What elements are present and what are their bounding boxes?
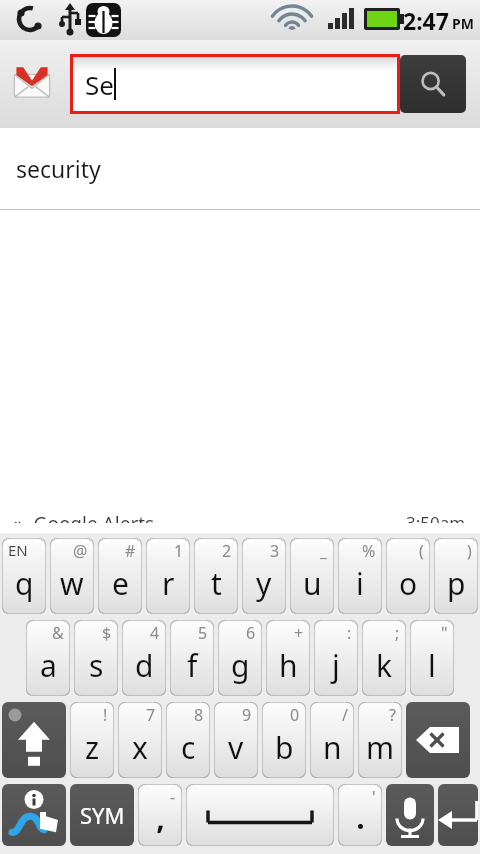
staticText: w [60,563,84,604]
button[interactable]: 0 [262,702,306,778]
staticText: 8 [194,704,204,726]
staticText: 1 [174,540,184,562]
staticText: 6 [246,622,256,644]
staticText: 3:50am [406,511,466,523]
staticText: x [132,727,148,768]
staticText: @ [73,540,88,562]
button[interactable]: : [314,620,358,696]
button[interactable]: 5 [170,620,214,696]
staticText: s [89,645,104,686]
staticText: o [399,563,418,604]
staticText: security [16,153,101,184]
staticText: 2 [222,540,232,562]
staticText: z [85,727,100,768]
staticText: j [332,645,340,686]
staticText: ( [419,540,424,562]
button[interactable]: 2 [194,538,238,614]
button[interactable]: 1 [146,538,190,614]
staticText: 7 [146,704,156,726]
staticText: t [211,563,222,604]
staticText: g [231,645,250,686]
button[interactable]: SYM [70,784,134,846]
button[interactable]: ! [70,702,114,778]
staticText: l [428,645,436,686]
button[interactable]: Shift [2,702,66,778]
button[interactable]: ) [434,538,478,614]
button[interactable]: 6 [218,620,262,696]
button[interactable]: security [0,128,480,209]
staticText: 0 [290,704,300,726]
button[interactable]: Gmail [8,60,56,108]
staticText: v [228,727,244,768]
staticText: k [376,645,393,686]
button[interactable]: 4 [122,620,166,696]
staticText: 9 [242,704,252,726]
staticText: d [135,645,154,686]
button[interactable]: # [98,538,142,614]
button[interactable]: 3 [242,538,286,614]
staticText: p [447,563,466,604]
staticText: e [112,563,129,604]
staticText: i [356,563,364,604]
staticText: r [162,563,175,604]
staticText: ! [103,704,108,726]
button[interactable]: ; [362,620,406,696]
button[interactable]: EN [2,538,46,614]
staticText: 5 [198,622,208,644]
staticText: _ [320,540,328,562]
staticText: 2:47 [403,5,449,36]
staticText: h [279,645,298,686]
staticText: % [362,540,376,562]
button[interactable]: 7 [118,702,162,778]
staticText: SYM [80,800,125,830]
staticText: q [15,563,34,604]
staticText: - [170,786,176,808]
staticText: u [303,563,322,604]
staticText: n [323,727,342,768]
staticText: a [40,645,57,686]
button[interactable]: Voice input [386,784,434,846]
staticText: $ [102,622,112,644]
staticText: , [156,797,165,838]
staticText: " [441,622,448,644]
staticText: ) [467,540,472,562]
button[interactable]: ' [338,784,382,846]
staticText: m [366,727,395,768]
button[interactable]: _ [290,538,334,614]
staticText: 4 [150,622,160,644]
staticText: PM [452,14,474,33]
button[interactable]: Gesture help [2,784,66,846]
staticText: EN [8,540,28,560]
button[interactable]: Backspace [406,702,470,778]
button[interactable]: / [310,702,354,778]
staticText: ; [395,622,400,644]
staticText: b [275,727,294,768]
staticText: / [342,704,348,726]
button[interactable]: $ [74,620,118,696]
staticText: y [256,563,272,604]
button[interactable]: Search [400,55,466,113]
button[interactable]: + [266,620,310,696]
button[interactable]: & [26,620,70,696]
staticText: : [347,622,352,644]
staticText: f [187,645,198,686]
button[interactable]: 9 [214,702,258,778]
button[interactable]: Enter [438,784,478,846]
staticText: Se [85,67,114,102]
button[interactable]: % [338,538,382,614]
button[interactable]: " [410,620,454,696]
staticText: 3 [270,540,280,562]
staticText: + [294,622,304,644]
button[interactable]: @ [50,538,94,614]
button[interactable]: 8 [166,702,210,778]
button[interactable]: Se [73,57,397,111]
staticText: & [52,622,64,644]
staticText: ' [372,786,376,808]
staticText: » Google Alerts [14,511,155,523]
button[interactable]: - [138,784,182,846]
button[interactable]: ( [386,538,430,614]
staticText: c [181,727,196,768]
button[interactable]: ? [358,702,402,778]
button[interactable]: Space [186,784,334,846]
staticText: ? [389,704,396,726]
